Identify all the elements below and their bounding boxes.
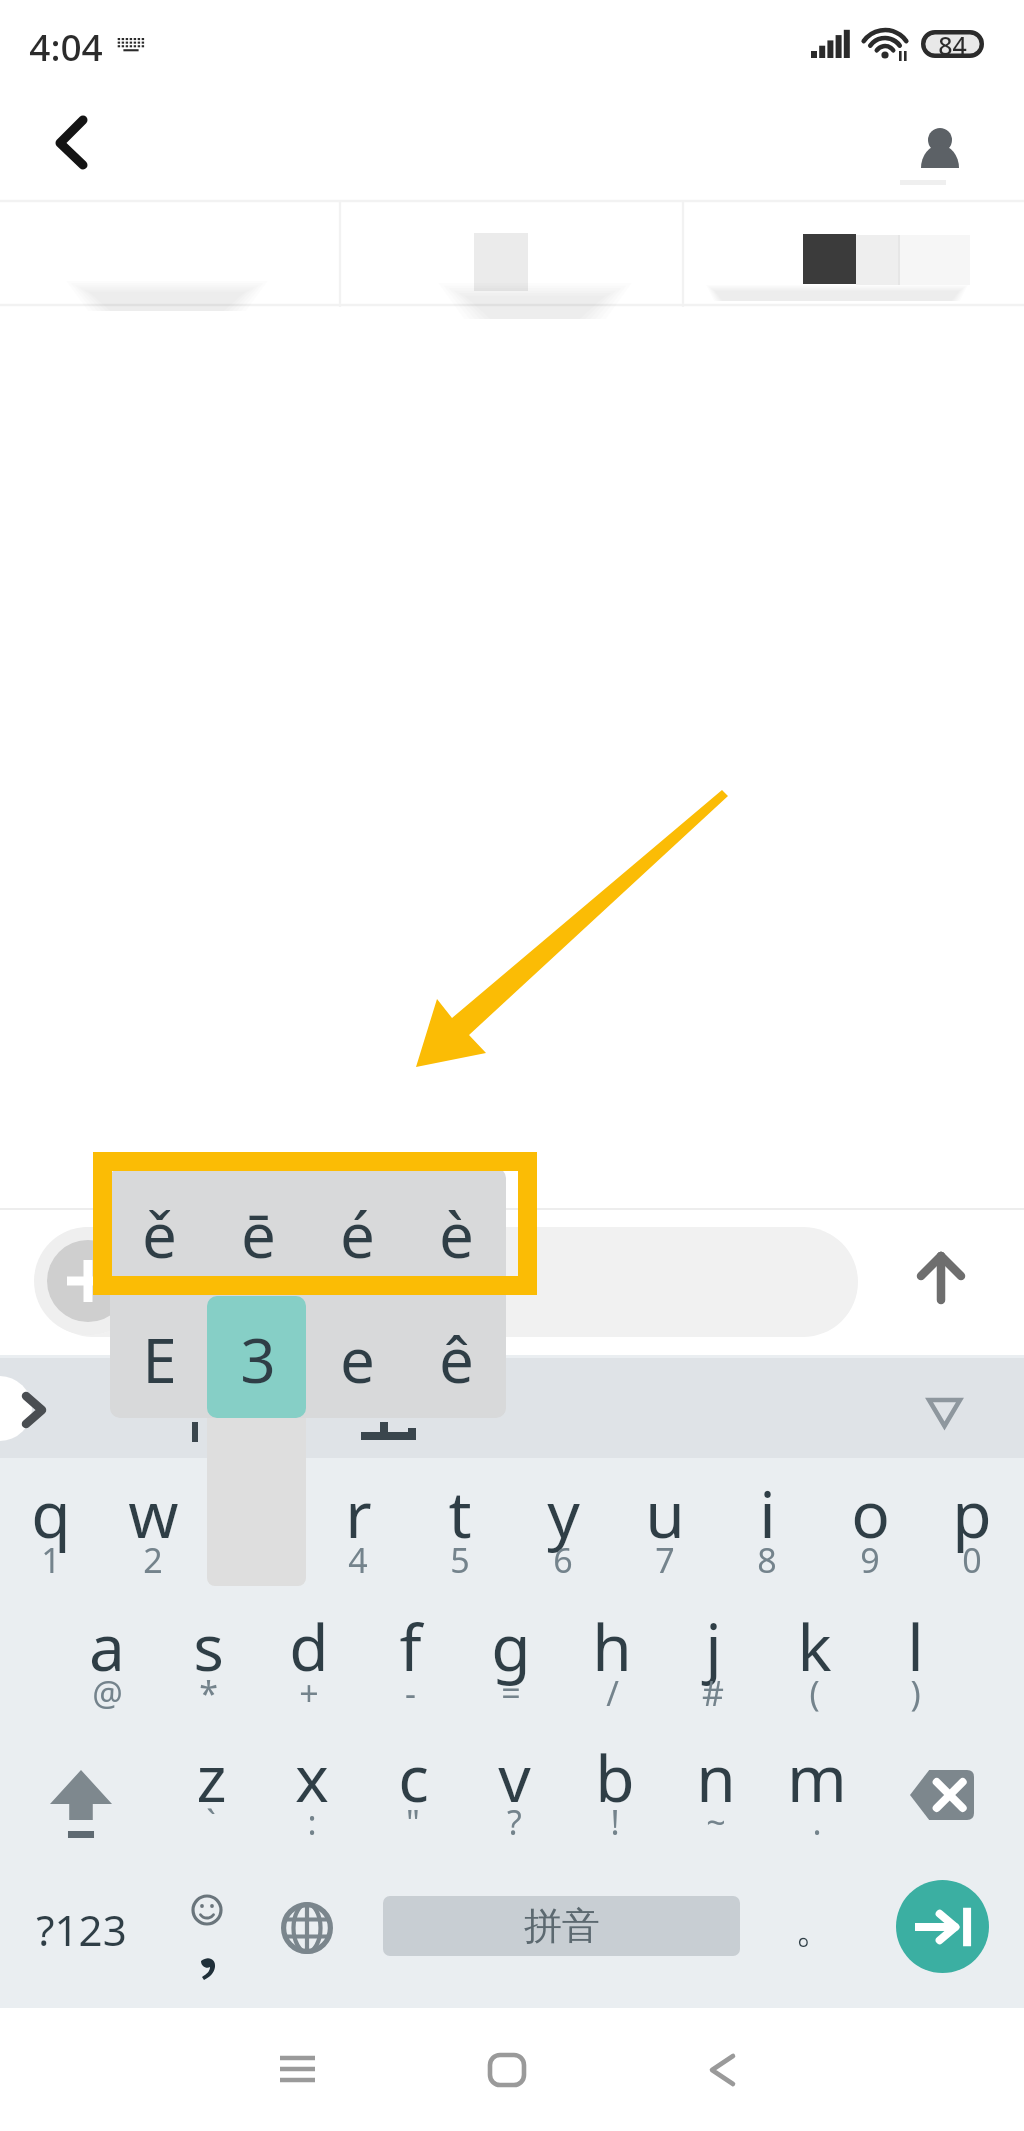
button[interactable]: Profile xyxy=(895,104,985,194)
button[interactable] xyxy=(10,1865,150,1985)
staticText: " xyxy=(406,1799,420,1845)
staticText: q xyxy=(31,1470,71,1557)
staticText: 2 xyxy=(143,1537,163,1583)
staticText: 拼音 xyxy=(524,1902,600,1950)
staticText: ē xyxy=(241,1192,276,1276)
staticText: r xyxy=(345,1470,372,1557)
staticText: b xyxy=(595,1734,635,1821)
staticText: 4 xyxy=(348,1537,368,1583)
button[interactable]: Emoji xyxy=(155,1865,265,1985)
button[interactable]: Switch language xyxy=(255,1865,365,1985)
staticText: 。 xyxy=(795,1903,835,1953)
staticText: w xyxy=(128,1470,179,1557)
button[interactable] xyxy=(261,1722,363,1853)
button[interactable] xyxy=(716,1460,818,1591)
button[interactable]: Add attachment xyxy=(34,1227,142,1335)
staticText: g xyxy=(491,1603,531,1690)
staticText: l xyxy=(907,1603,924,1690)
staticText: # xyxy=(702,1670,724,1716)
staticText: 8 xyxy=(757,1537,777,1583)
staticText: 3 xyxy=(240,1317,276,1401)
button[interactable] xyxy=(308,1296,407,1418)
button[interactable]: Home xyxy=(430,2018,585,2118)
staticText: ~ xyxy=(706,1799,726,1845)
staticText: k xyxy=(797,1603,832,1690)
button[interactable] xyxy=(614,1460,716,1591)
button[interactable] xyxy=(308,1168,407,1293)
button[interactable] xyxy=(56,1591,158,1722)
button[interactable] xyxy=(0,1460,102,1591)
staticText: ?123 xyxy=(36,1901,127,1958)
button[interactable] xyxy=(921,1460,1023,1591)
staticText: ! xyxy=(610,1799,620,1845)
button[interactable] xyxy=(460,1591,562,1722)
staticText: v xyxy=(498,1734,531,1821)
button[interactable] xyxy=(819,1460,921,1591)
staticText: / xyxy=(606,1670,619,1716)
staticText: 7 xyxy=(655,1537,675,1583)
button[interactable] xyxy=(110,1168,209,1293)
button[interactable] xyxy=(765,1865,865,1985)
button[interactable] xyxy=(204,1460,306,1591)
staticText: 0 xyxy=(962,1537,982,1583)
button[interactable] xyxy=(209,1296,308,1418)
staticText: ê xyxy=(439,1317,474,1401)
button[interactable] xyxy=(258,1591,360,1722)
button[interactable]: Backspace xyxy=(878,1722,1008,1853)
button[interactable]: Back xyxy=(648,2018,803,2118)
button[interactable] xyxy=(409,1460,511,1591)
staticText: è xyxy=(439,1192,474,1276)
staticText: j xyxy=(705,1603,722,1690)
staticText: 84 xyxy=(938,28,967,62)
staticText: z xyxy=(196,1734,227,1821)
button[interactable] xyxy=(512,1460,614,1591)
button[interactable] xyxy=(102,1460,204,1591)
button[interactable]: 拼音 xyxy=(383,1896,740,1956)
button[interactable] xyxy=(665,1722,767,1853)
staticText: d xyxy=(289,1603,329,1690)
staticText: 6 xyxy=(553,1537,573,1583)
button[interactable]: Shift xyxy=(20,1722,148,1853)
button[interactable] xyxy=(359,1591,461,1722)
button[interactable] xyxy=(110,1296,209,1418)
button[interactable] xyxy=(766,1722,868,1853)
button[interactable] xyxy=(463,1722,565,1853)
button[interactable]: Enter xyxy=(896,1880,989,1973)
staticText: n xyxy=(696,1734,736,1821)
staticText: y xyxy=(547,1470,580,1557)
staticText: f xyxy=(399,1603,422,1690)
button[interactable] xyxy=(564,1722,666,1853)
button[interactable]: Send xyxy=(895,1230,987,1322)
staticText: p xyxy=(952,1470,992,1557)
button[interactable]: Hide keyboard xyxy=(912,1376,978,1442)
button[interactable] xyxy=(307,1460,409,1591)
button[interactable] xyxy=(662,1591,764,1722)
button[interactable]: Recents xyxy=(220,2018,375,2118)
staticText: e xyxy=(340,1317,375,1401)
button[interactable] xyxy=(157,1591,259,1722)
button[interactable] xyxy=(407,1168,506,1293)
staticText: ` xyxy=(206,1799,216,1845)
button[interactable] xyxy=(362,1722,464,1853)
button[interactable]: Back xyxy=(26,98,106,178)
button[interactable] xyxy=(407,1296,506,1418)
button[interactable] xyxy=(864,1591,966,1722)
button[interactable] xyxy=(160,1722,262,1853)
staticText: ? xyxy=(507,1799,522,1845)
button[interactable]: Expand toolbar xyxy=(0,1376,32,1441)
staticText: = xyxy=(501,1670,521,1716)
button[interactable] xyxy=(209,1168,308,1293)
staticText: @ xyxy=(92,1670,123,1716)
staticText: m xyxy=(787,1734,847,1821)
button[interactable] xyxy=(561,1591,663,1722)
staticText: * xyxy=(199,1670,218,1716)
staticText: E xyxy=(142,1317,177,1401)
button[interactable] xyxy=(763,1591,865,1722)
staticText: h xyxy=(592,1603,632,1690)
button[interactable] xyxy=(38,1227,858,1337)
staticText: ě xyxy=(142,1192,177,1276)
staticText: 4:04 xyxy=(29,21,103,71)
staticText: 5 xyxy=(450,1537,470,1583)
